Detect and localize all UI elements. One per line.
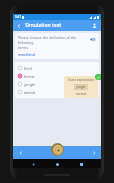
staticText: Simulation test [25, 22, 90, 29]
button[interactable]: Previous [16, 148, 25, 157]
button[interactable]: Score [51, 143, 64, 156]
button[interactable]: field [15, 64, 99, 72]
button[interactable]: Back [15, 22, 23, 30]
staticText: forest [24, 74, 35, 79]
button[interactable]: forest [15, 72, 99, 80]
staticText: woodland [18, 52, 36, 57]
button[interactable]: Back [29, 160, 37, 168]
button[interactable]: Toast explanation [64, 76, 98, 98]
staticText: terms [18, 45, 28, 50]
button[interactable]: Please choose the definition of the foll… [15, 33, 99, 59]
button[interactable]: weeds [15, 88, 99, 96]
staticText: correct [76, 92, 87, 96]
button[interactable]: Account [90, 21, 99, 30]
button[interactable]: Recent apps [77, 160, 85, 168]
staticText: Please choose the definition of the foll… [18, 35, 86, 45]
button[interactable]: Correct [95, 74, 101, 80]
staticText: jungle [24, 82, 36, 87]
button[interactable]: Home [53, 160, 61, 168]
staticText: field [24, 66, 32, 71]
button[interactable]: Next [89, 148, 98, 157]
staticText: 9:41 [15, 15, 21, 19]
staticText: Toast explanation [68, 78, 95, 82]
staticText: weeds [24, 90, 36, 95]
staticText: jungle [76, 85, 86, 89]
button[interactable]: Play audio [88, 35, 96, 43]
button[interactable]: jungle [15, 80, 99, 88]
